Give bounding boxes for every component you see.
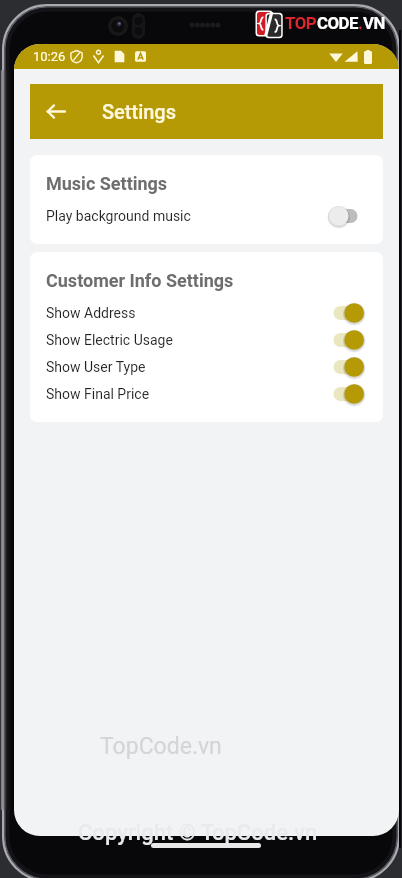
staticText: Show User Type: [46, 359, 146, 375]
staticText: Copyright © TopCode.vn: [78, 820, 318, 846]
button[interactable]: On: [329, 302, 364, 324]
staticText: Music Settings: [46, 173, 168, 194]
button[interactable]: Show Electric Usage: [30, 326, 383, 353]
button[interactable]: Show User Type: [30, 353, 383, 380]
button[interactable]: Back: [30, 84, 383, 139]
button[interactable]: Back: [30, 84, 80, 139]
button[interactable]: Off: [329, 205, 364, 227]
button[interactable]: Show Final Price: [30, 380, 383, 407]
staticText: CODE: [317, 13, 358, 33]
button[interactable]: On: [329, 329, 364, 351]
staticText: Customer Info Settings: [46, 270, 234, 291]
staticText: TopCode.vn: [100, 733, 222, 760]
button[interactable]: On: [329, 383, 364, 405]
staticText: 10:26: [33, 49, 66, 64]
staticText: Show Final Price: [46, 386, 150, 402]
button[interactable]: Play background music: [30, 202, 383, 229]
staticText: Play background music: [46, 208, 191, 224]
staticText: Show Electric Usage: [46, 332, 173, 348]
staticText: .: [358, 13, 363, 33]
staticText: VN: [363, 13, 385, 33]
button[interactable]: Show Address: [30, 299, 383, 326]
button[interactable]: On: [329, 356, 364, 378]
staticText: TOP: [285, 13, 317, 33]
staticText: Show Address: [46, 305, 136, 321]
staticText: Settings: [102, 100, 177, 123]
